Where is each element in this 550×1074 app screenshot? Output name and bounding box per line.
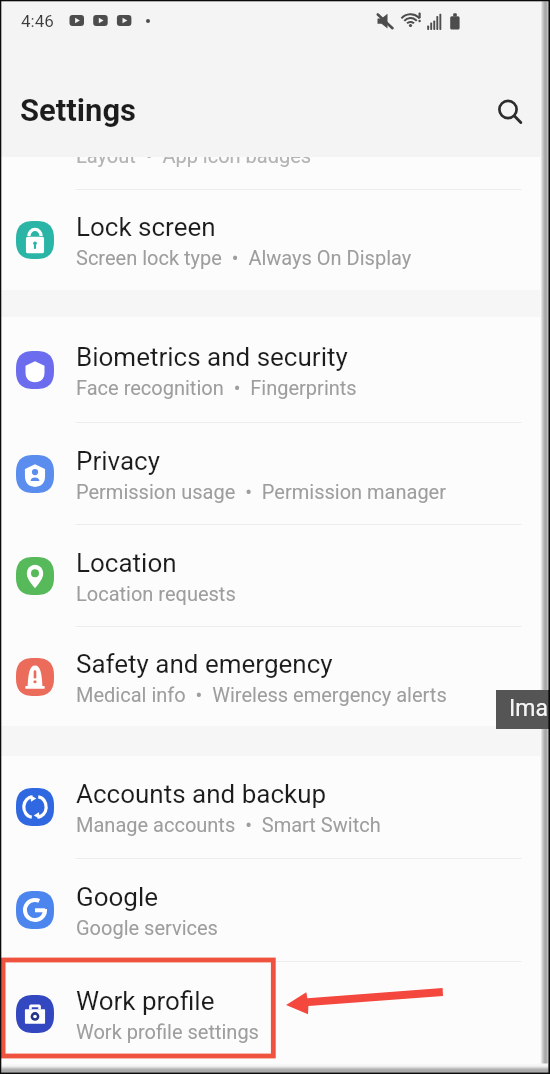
staticText: Work profile <box>76 986 215 1016</box>
button[interactable]: Lock screen <box>0 190 550 290</box>
staticText: Location requests <box>76 582 236 605</box>
staticText: Medical info • Wireless emergency alerts <box>76 683 447 706</box>
staticText: Manage accounts • Smart Switch <box>76 813 381 836</box>
staticText: Face recognition • Fingerprints <box>76 376 357 399</box>
staticText: 4:46 <box>21 11 54 31</box>
staticText: Work profile settings <box>76 1020 259 1043</box>
staticText: Imag <box>509 695 550 722</box>
staticText: Accounts and backup <box>76 779 327 809</box>
button[interactable]: Safety and emergency <box>0 627 550 726</box>
staticText: Privacy <box>76 446 160 476</box>
staticText: Lock screen <box>76 212 216 242</box>
staticText: Settings <box>20 92 137 128</box>
staticText: Location <box>76 548 177 578</box>
staticText: Screen lock type • Always On Display <box>76 246 412 269</box>
button[interactable]: Biometrics and security <box>0 317 550 422</box>
staticText: Google <box>76 882 159 912</box>
button[interactable]: Search <box>487 88 529 130</box>
button[interactable]: Google <box>0 859 550 961</box>
staticText: Google services <box>76 916 218 939</box>
staticText: Safety and emergency <box>76 649 333 679</box>
button[interactable]: Work profile <box>0 962 550 1065</box>
staticText: Permission usage • Permission manager <box>76 480 446 503</box>
staticText: Biometrics and security <box>76 342 348 372</box>
button[interactable]: Location <box>0 525 550 626</box>
button[interactable]: Privacy <box>0 423 550 524</box>
button[interactable]: Accounts and backup <box>0 756 550 858</box>
staticText: Layout • App icon badges <box>76 157 312 167</box>
